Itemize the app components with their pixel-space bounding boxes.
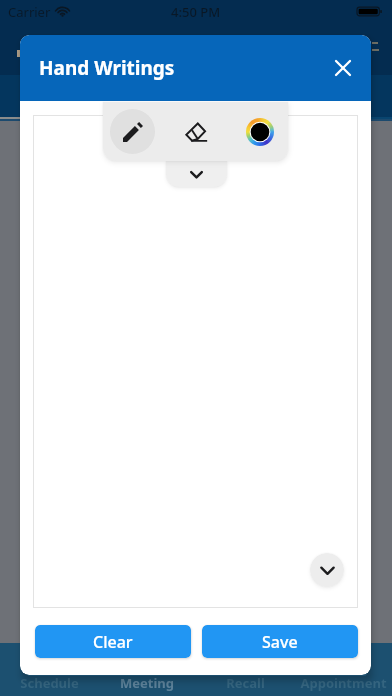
staticText: Hand Writings [39,55,175,81]
staticText: Meeting [120,674,174,692]
staticText: 4:50 PM [171,3,221,21]
button[interactable]: Color [238,110,282,154]
button[interactable]: Hide tools [166,161,227,187]
button[interactable]: Clear [35,625,191,658]
button[interactable]: Collapse [310,553,344,587]
button[interactable]: Save [202,625,358,658]
button[interactable]: Close [326,51,360,85]
button[interactable]: Recall [196,643,294,696]
staticText: Appointment [300,674,387,692]
staticText: Schedule [20,674,79,692]
staticText: Carrier [8,3,51,21]
staticText: Recall [226,674,265,692]
button[interactable]: Appointment [294,643,392,696]
staticText: Clear [93,631,133,653]
button[interactable]: Meeting [98,643,196,696]
button[interactable]: Eraser [174,110,218,154]
staticText: Save [262,631,298,653]
button[interactable]: Pen [110,109,155,154]
button[interactable]: Schedule [0,643,98,696]
